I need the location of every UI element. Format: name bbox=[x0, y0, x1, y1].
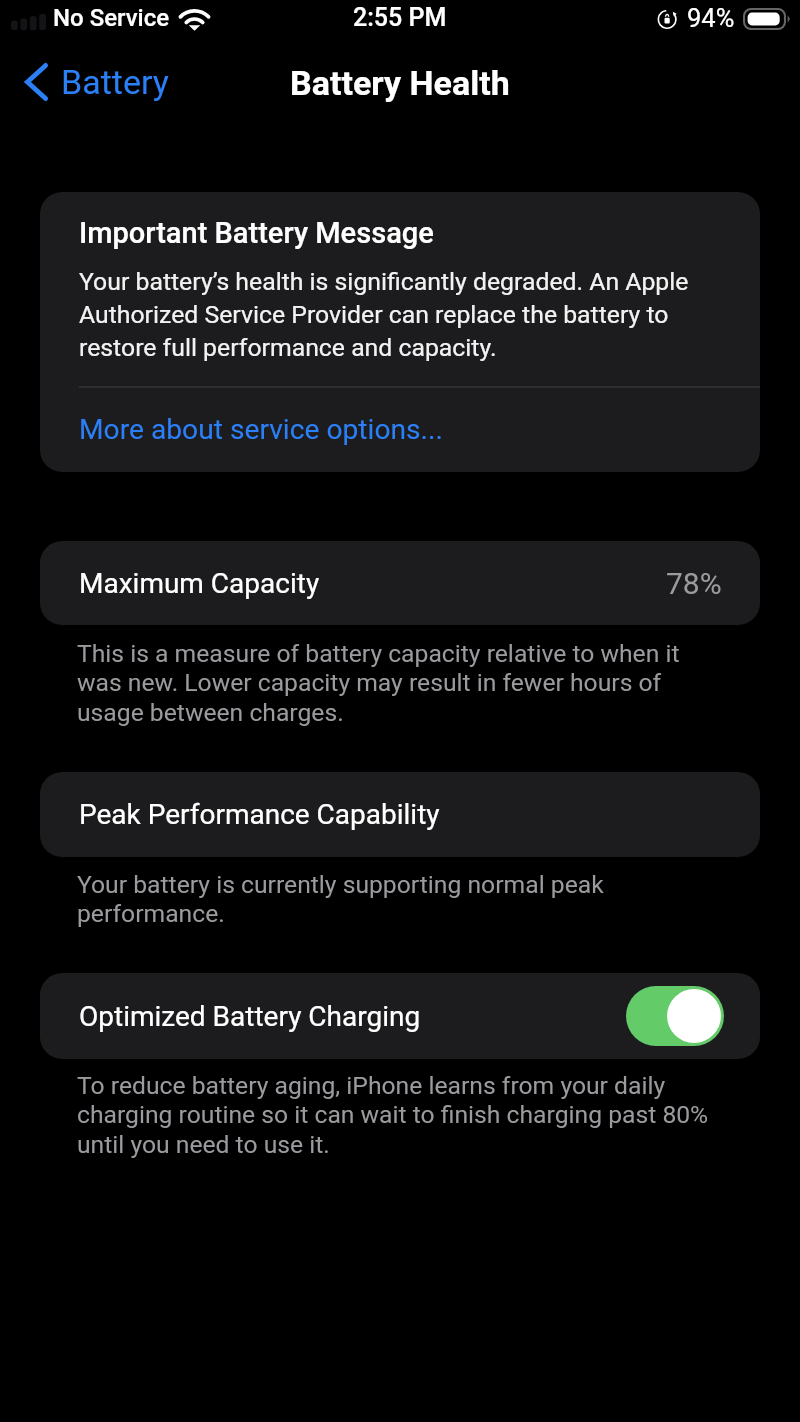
staticText: Your battery’s health is significantly d… bbox=[79, 267, 721, 362]
staticText: To reduce battery aging, iPhone learns f… bbox=[77, 1071, 737, 1159]
staticText: 94% bbox=[687, 3, 735, 33]
button[interactable]: Maximum Capacity bbox=[40, 541, 760, 625]
staticText: Peak Performance Capability bbox=[79, 798, 440, 831]
staticText: 78% bbox=[666, 566, 722, 601]
staticText: Maximum Capacity bbox=[79, 567, 320, 600]
button[interactable]: More about service options... bbox=[40, 388, 760, 472]
staticText: More about service options... bbox=[79, 413, 443, 446]
button[interactable]: Optimized Battery Charging toggle bbox=[626, 986, 724, 1046]
staticText: Optimized Battery Charging bbox=[79, 1000, 421, 1033]
staticText: This is a measure of battery capacity re… bbox=[77, 639, 717, 727]
staticText: Your battery is currently supporting nor… bbox=[77, 870, 717, 928]
staticText: Battery Health bbox=[290, 63, 510, 103]
button[interactable]: Optimized Battery Charging bbox=[40, 973, 760, 1059]
staticText: 2:55 PM bbox=[353, 3, 447, 32]
staticText: Important Battery Message bbox=[79, 216, 434, 250]
staticText: Battery bbox=[61, 62, 169, 102]
button[interactable]: Peak Performance Capability bbox=[40, 772, 760, 857]
staticText: No Service bbox=[53, 4, 170, 32]
button[interactable]: Back to Battery bbox=[14, 55, 185, 109]
